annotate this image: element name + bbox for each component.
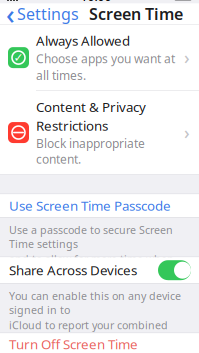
staticText: Screen Time — [89, 3, 183, 24]
staticText: › — [184, 121, 190, 144]
staticText: all times. — [36, 67, 86, 83]
button[interactable]: Share Across Devices — [158, 260, 191, 280]
staticText: › — [184, 46, 190, 69]
staticText: Choose apps you want at — [36, 50, 175, 66]
button[interactable]: Turn Off Screen Time — [0, 333, 199, 353]
staticText: Block inappropriate content. — [36, 135, 145, 167]
staticText: 10:00 — [80, 0, 111, 4]
staticText: Share Across Devices — [9, 261, 137, 279]
staticText: Content & Privacy — [36, 98, 146, 116]
staticText: Restrictions — [36, 117, 108, 134]
staticText: Use a passcode to secure Screen Time set… — [9, 223, 173, 251]
staticText: ‹ — [6, 0, 15, 31]
staticText: Settings — [17, 3, 79, 24]
staticText: iCloud to report your combined screen ti… — [9, 318, 168, 346]
staticText: You can enable this on any device signed… — [9, 289, 181, 317]
button[interactable]: Use Screen Time Passcode — [0, 194, 199, 217]
staticText: Always Allowed — [36, 32, 130, 49]
staticText: ✓ — [13, 51, 23, 64]
button[interactable]: Content & Privacy — [0, 91, 199, 174]
button[interactable]: ‹ — [0, 3, 83, 24]
staticText: and to allow for more time when limits e… — [9, 252, 174, 280]
button[interactable]: ✓ — [0, 25, 199, 90]
staticText: Turn Off Screen Time — [9, 335, 138, 353]
staticText: Use Screen Time Passcode — [9, 197, 171, 214]
